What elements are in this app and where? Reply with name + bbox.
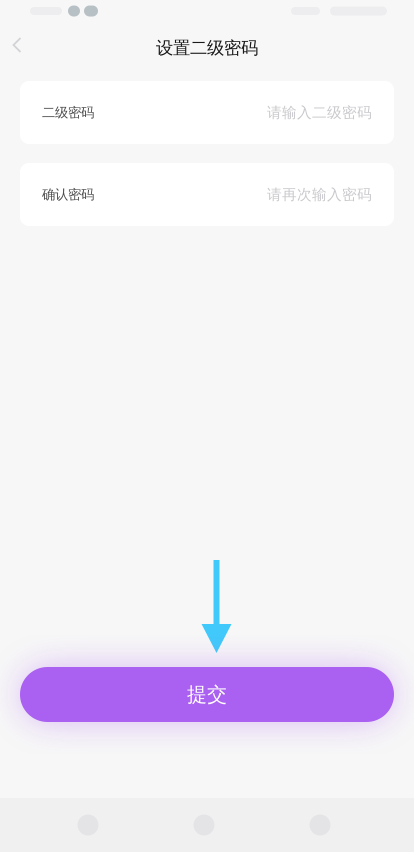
staticText: 请输入二级密码 <box>267 103 372 121</box>
button[interactable]: Back <box>0 26 34 70</box>
staticText: 请再次输入密码 <box>267 185 372 203</box>
button[interactable]: 二级密码 <box>20 81 394 144</box>
staticText: 设置二级密码 <box>156 37 258 59</box>
button[interactable]: 确认密码 <box>20 163 394 226</box>
staticText: 提交 <box>187 682 227 707</box>
button[interactable]: 提交 <box>20 667 394 722</box>
staticText: 确认密码 <box>42 186 94 203</box>
staticText: 二级密码 <box>42 104 94 121</box>
